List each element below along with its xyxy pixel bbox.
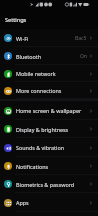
staticText: Biometrics & password <box>16 181 75 188</box>
staticText: Notifications <box>16 163 49 170</box>
staticText: Sounds & vibration <box>16 144 65 151</box>
button[interactable]: Wi-Fi <box>0 29 98 47</box>
staticText: Mobile network <box>16 70 56 77</box>
button[interactable]: Notifications <box>0 157 98 175</box>
staticText: Apps <box>16 199 29 206</box>
staticText: Home screen & wallpaper <box>16 107 82 114</box>
button[interactable]: Apps <box>0 193 98 212</box>
button[interactable]: Bluetooth <box>0 47 98 65</box>
staticText: Display & brightness <box>16 126 69 133</box>
button[interactable]: More connections <box>0 82 98 99</box>
staticText: Bac5 <box>75 35 87 42</box>
staticText: Wi-Fi <box>16 35 29 42</box>
button[interactable]: Sounds & vibration <box>0 138 98 157</box>
staticText: On <box>80 53 87 60</box>
staticText: Bluetooth <box>16 53 42 60</box>
button[interactable]: Home screen & wallpaper <box>0 101 98 120</box>
button[interactable]: Display & brightness <box>0 120 98 138</box>
button[interactable]: Biometrics & password <box>0 175 98 193</box>
staticText: Settings <box>5 16 27 24</box>
button[interactable]: Mobile network <box>0 65 98 82</box>
staticText: More connections <box>16 87 62 94</box>
